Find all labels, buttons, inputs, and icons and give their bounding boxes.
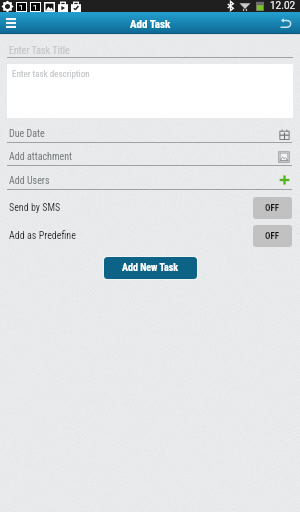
staticText: Add attachment xyxy=(9,151,72,163)
button[interactable]: Undo xyxy=(276,14,294,32)
staticText: OFF xyxy=(265,231,280,242)
staticText: Send by SMS xyxy=(9,202,61,214)
staticText: 1 xyxy=(33,3,38,11)
button[interactable]: OFF xyxy=(253,197,292,219)
staticText: Add Task xyxy=(130,18,171,31)
staticText: 12.02 xyxy=(270,0,296,12)
staticText: Add as Predefine xyxy=(9,230,76,242)
button[interactable]: Due Date xyxy=(7,119,292,143)
staticText: Enter task description xyxy=(12,69,90,80)
button[interactable]: Pick due date xyxy=(279,129,290,140)
button[interactable]: Enter Task Title xyxy=(7,36,293,58)
button[interactable]: Add users xyxy=(279,175,290,185)
staticText: OFF xyxy=(265,203,280,214)
button[interactable]: OFF xyxy=(253,225,292,247)
button[interactable]: Add attachment xyxy=(278,151,290,163)
staticText: 1 xyxy=(19,3,24,11)
staticText: Add Users xyxy=(9,175,50,187)
staticText: Add New Task xyxy=(122,262,179,274)
staticText: Enter Task Title xyxy=(9,45,70,57)
staticText: Due Date xyxy=(9,128,45,140)
button[interactable]: Add attachment xyxy=(7,142,292,166)
button[interactable]: Open navigation menu xyxy=(1,13,21,33)
button[interactable]: Enter task description xyxy=(7,64,293,118)
button[interactable]: Add New Task xyxy=(104,257,197,279)
button[interactable]: Add Users xyxy=(7,166,292,190)
